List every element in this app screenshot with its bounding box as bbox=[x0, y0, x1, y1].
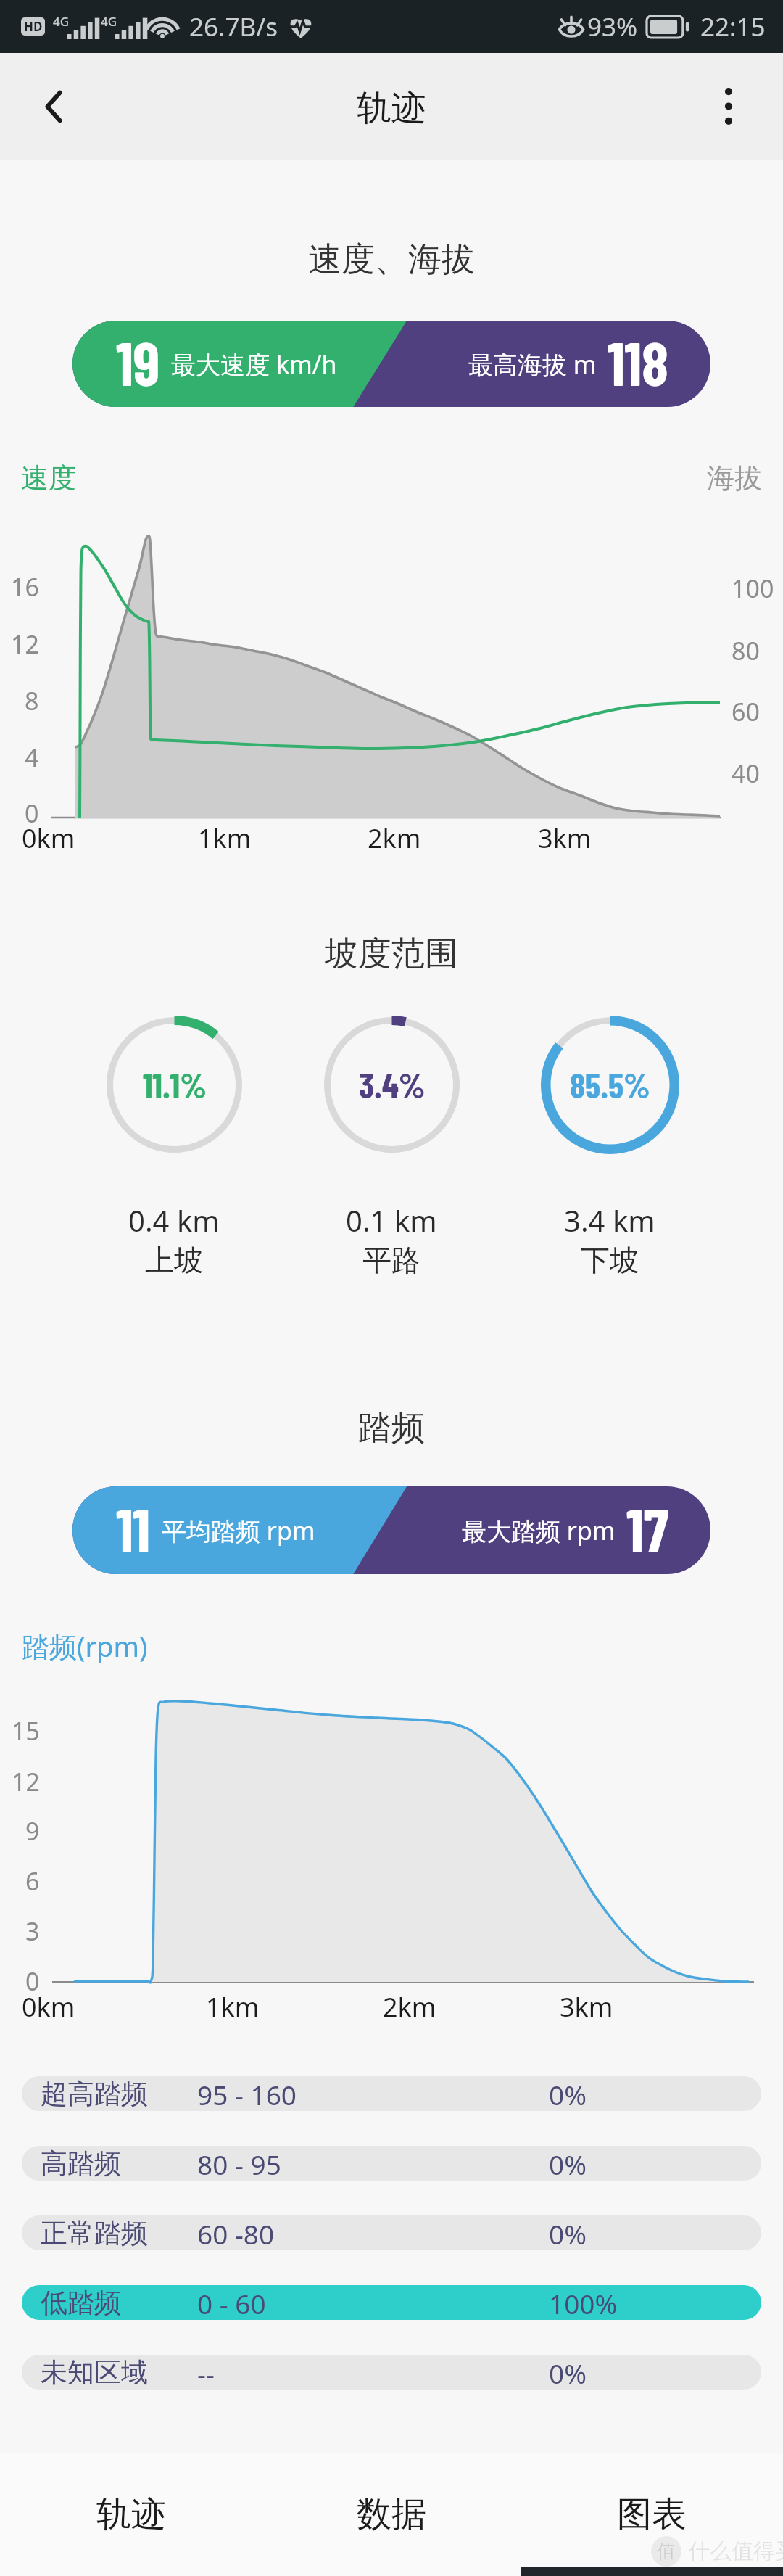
staticText: 下坡 bbox=[581, 1242, 639, 1278]
staticText: 0% bbox=[549, 2146, 587, 2181]
staticText: 未知区域 bbox=[41, 2355, 148, 2390]
button[interactable]: 正常踏频 bbox=[22, 2215, 761, 2250]
staticText: 速度、海拔 bbox=[308, 239, 475, 281]
staticText: 11 bbox=[116, 1491, 151, 1565]
staticText: 上坡 bbox=[145, 1242, 203, 1278]
staticText: 超高踏频 bbox=[41, 2077, 148, 2111]
staticText: 12 bbox=[11, 627, 39, 661]
staticText: 0% bbox=[549, 2215, 587, 2250]
staticText: 低踏频 bbox=[41, 2286, 121, 2320]
staticText: 8 bbox=[25, 684, 39, 717]
staticText: 19 bbox=[116, 325, 160, 398]
button[interactable]: 19 bbox=[72, 321, 710, 407]
button[interactable]: 超高踏频 bbox=[22, 2076, 761, 2111]
button[interactable]: 数据 bbox=[261, 2453, 522, 2576]
staticText: 1km bbox=[206, 1989, 260, 2025]
staticText: 93% bbox=[587, 9, 638, 44]
staticText: 80 - 95 bbox=[197, 2146, 281, 2181]
staticText: 4G bbox=[101, 13, 117, 30]
staticText: 100 bbox=[732, 572, 774, 605]
staticText: 0% bbox=[549, 2076, 587, 2111]
staticText: 60 -80 bbox=[197, 2215, 275, 2250]
staticText: 95 - 160 bbox=[197, 2076, 297, 2111]
staticText: 80 bbox=[732, 634, 760, 667]
staticText: 什么值得买 bbox=[688, 2538, 783, 2565]
staticText: 100% bbox=[549, 2285, 618, 2320]
staticText: 平路 bbox=[362, 1242, 420, 1278]
staticText: 正常踏频 bbox=[41, 2216, 148, 2250]
staticText: 3km bbox=[538, 820, 592, 856]
staticText: 0.4 km bbox=[128, 1201, 220, 1240]
staticText: 0% bbox=[549, 2355, 587, 2390]
button[interactable]: 低踏频 bbox=[22, 2285, 761, 2320]
staticText: 3.4 km bbox=[564, 1201, 655, 1240]
staticText: 85.5% bbox=[570, 1063, 650, 1106]
staticText: 平均踏频 rpm bbox=[162, 1514, 315, 1547]
staticText: 0km bbox=[22, 820, 75, 856]
staticText: 60 bbox=[732, 695, 760, 728]
button[interactable]: 轨迹 bbox=[1, 2453, 262, 2576]
staticText: 2km bbox=[368, 820, 421, 856]
staticText: -- bbox=[197, 2355, 215, 2390]
staticText: 图表 bbox=[617, 2493, 687, 2536]
staticText: 最大速度 km/h bbox=[171, 347, 337, 381]
staticText: 118 bbox=[608, 325, 669, 398]
button[interactable]: 高踏频 bbox=[22, 2146, 761, 2181]
button[interactable]: 未知区域 bbox=[22, 2355, 761, 2390]
staticText: 3km bbox=[560, 1989, 613, 2025]
staticText: 值 bbox=[657, 2540, 676, 2564]
staticText: 22:15 bbox=[700, 9, 766, 44]
button[interactable]: More options bbox=[674, 53, 783, 160]
staticText: 0.1 km bbox=[346, 1201, 437, 1240]
staticText: 海拔 bbox=[707, 461, 762, 495]
staticText: 踏频(rpm) bbox=[22, 1627, 148, 1665]
staticText: 11.1% bbox=[143, 1063, 207, 1106]
staticText: 3.4% bbox=[359, 1063, 426, 1106]
staticText: 高踏频 bbox=[41, 2147, 121, 2181]
staticText: 轨迹 bbox=[96, 2493, 166, 2536]
staticText: HD bbox=[24, 18, 43, 35]
staticText: 最高海拔 m bbox=[468, 347, 597, 381]
staticText: 26.7B/s bbox=[189, 9, 278, 44]
staticText: 0 bbox=[25, 797, 39, 830]
staticText: 最大踏频 rpm bbox=[462, 1514, 616, 1547]
staticText: 2km bbox=[383, 1989, 436, 2025]
staticText: 16 bbox=[11, 570, 39, 604]
staticText: 坡度范围 bbox=[325, 933, 458, 975]
button[interactable]: Back bbox=[0, 53, 107, 160]
button[interactable]: 11 bbox=[72, 1486, 710, 1574]
staticText: 速度 bbox=[21, 461, 76, 495]
staticText: 0 bbox=[25, 1964, 40, 1998]
staticText: 1km bbox=[198, 820, 252, 856]
staticText: 3 bbox=[25, 1914, 40, 1948]
staticText: 6 bbox=[25, 1864, 40, 1898]
staticText: 4 bbox=[25, 741, 39, 774]
staticText: 4G bbox=[53, 13, 70, 30]
staticText: 踏频 bbox=[358, 1407, 425, 1449]
staticText: 0 - 60 bbox=[197, 2285, 266, 2320]
staticText: 12 bbox=[12, 1765, 40, 1798]
button[interactable]: 图表 bbox=[521, 2453, 782, 2576]
staticText: 15 bbox=[12, 1714, 40, 1748]
staticText: 9 bbox=[25, 1814, 40, 1848]
staticText: 数据 bbox=[357, 2493, 426, 2536]
staticText: 40 bbox=[732, 757, 760, 790]
staticText: 17 bbox=[626, 1491, 669, 1565]
staticText: 0km bbox=[22, 1989, 75, 2025]
staticText: 轨迹 bbox=[357, 86, 426, 130]
